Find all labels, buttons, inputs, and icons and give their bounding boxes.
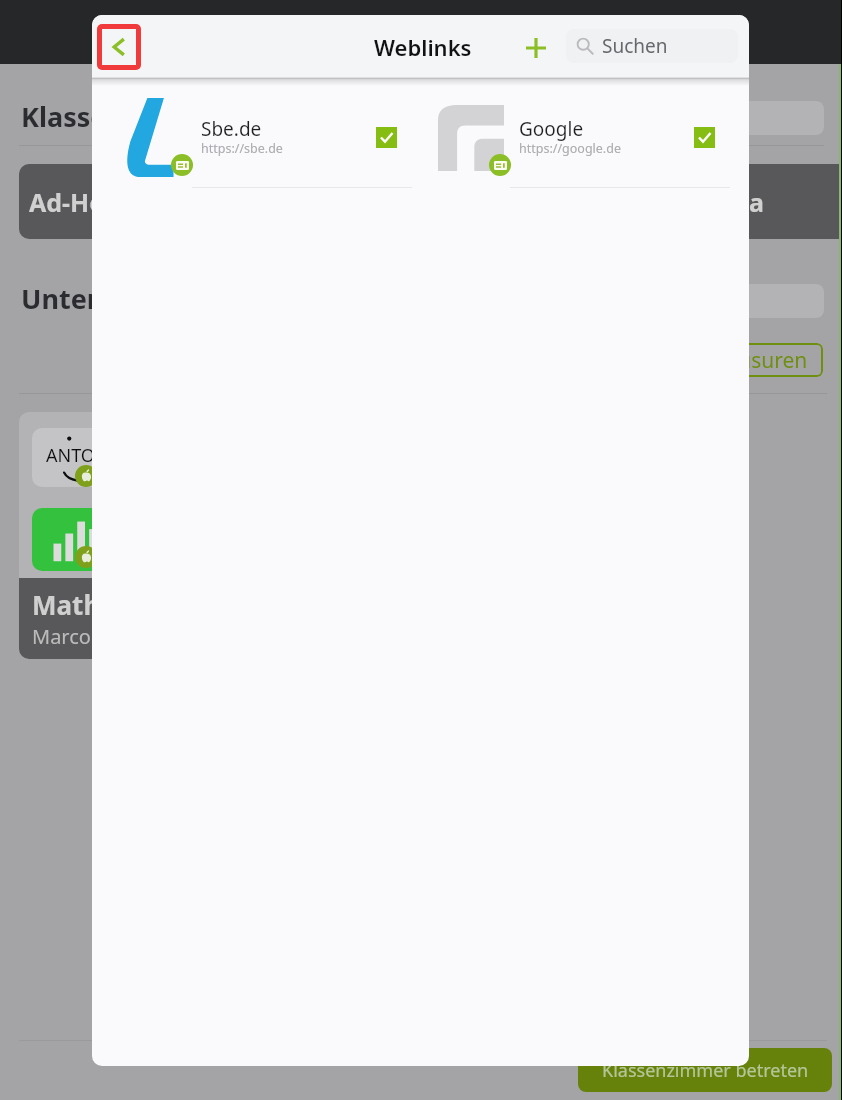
- staticText: Google: [519, 116, 584, 142]
- staticText: Unterricht: [21, 280, 163, 317]
- staticText: Suchen: [602, 33, 668, 59]
- button[interactable]: [713, 284, 824, 318]
- staticText: https://sbe.de: [201, 140, 283, 157]
- staticText: Aula: [708, 185, 764, 219]
- button[interactable]: Ad-Hoc Klassenzimmer erstellen: [19, 164, 842, 239]
- button[interactable]: Sbe.de: [118, 84, 436, 194]
- button[interactable]: Suchen: [566, 29, 738, 63]
- button[interactable]: Klassenzimmer betreten: [578, 1048, 832, 1092]
- button[interactable]: Add weblink: [525, 37, 547, 59]
- button[interactable]: Klausuren: [693, 343, 823, 377]
- staticText: Mathematik: [32, 587, 192, 622]
- staticText: https://google.de: [519, 140, 621, 157]
- staticText: Klausuren: [708, 346, 808, 375]
- staticText: Sbe.de: [201, 116, 262, 142]
- staticText: Marco Becker: [32, 623, 161, 650]
- button[interactable]: Back: [102, 29, 136, 65]
- button[interactable]: Google: [436, 84, 749, 194]
- staticText: Ad-Hoc Klassenzimmer erstellen: [29, 185, 432, 219]
- staticText: Klassenzimmer: [21, 98, 227, 135]
- button[interactable]: [713, 101, 824, 135]
- staticText: Klassenzimmer betreten: [602, 1058, 809, 1083]
- staticText: Weblinks: [374, 32, 472, 62]
- button[interactable]: ANTON: [19, 412, 414, 659]
- staticText: ANTON: [46, 443, 109, 468]
